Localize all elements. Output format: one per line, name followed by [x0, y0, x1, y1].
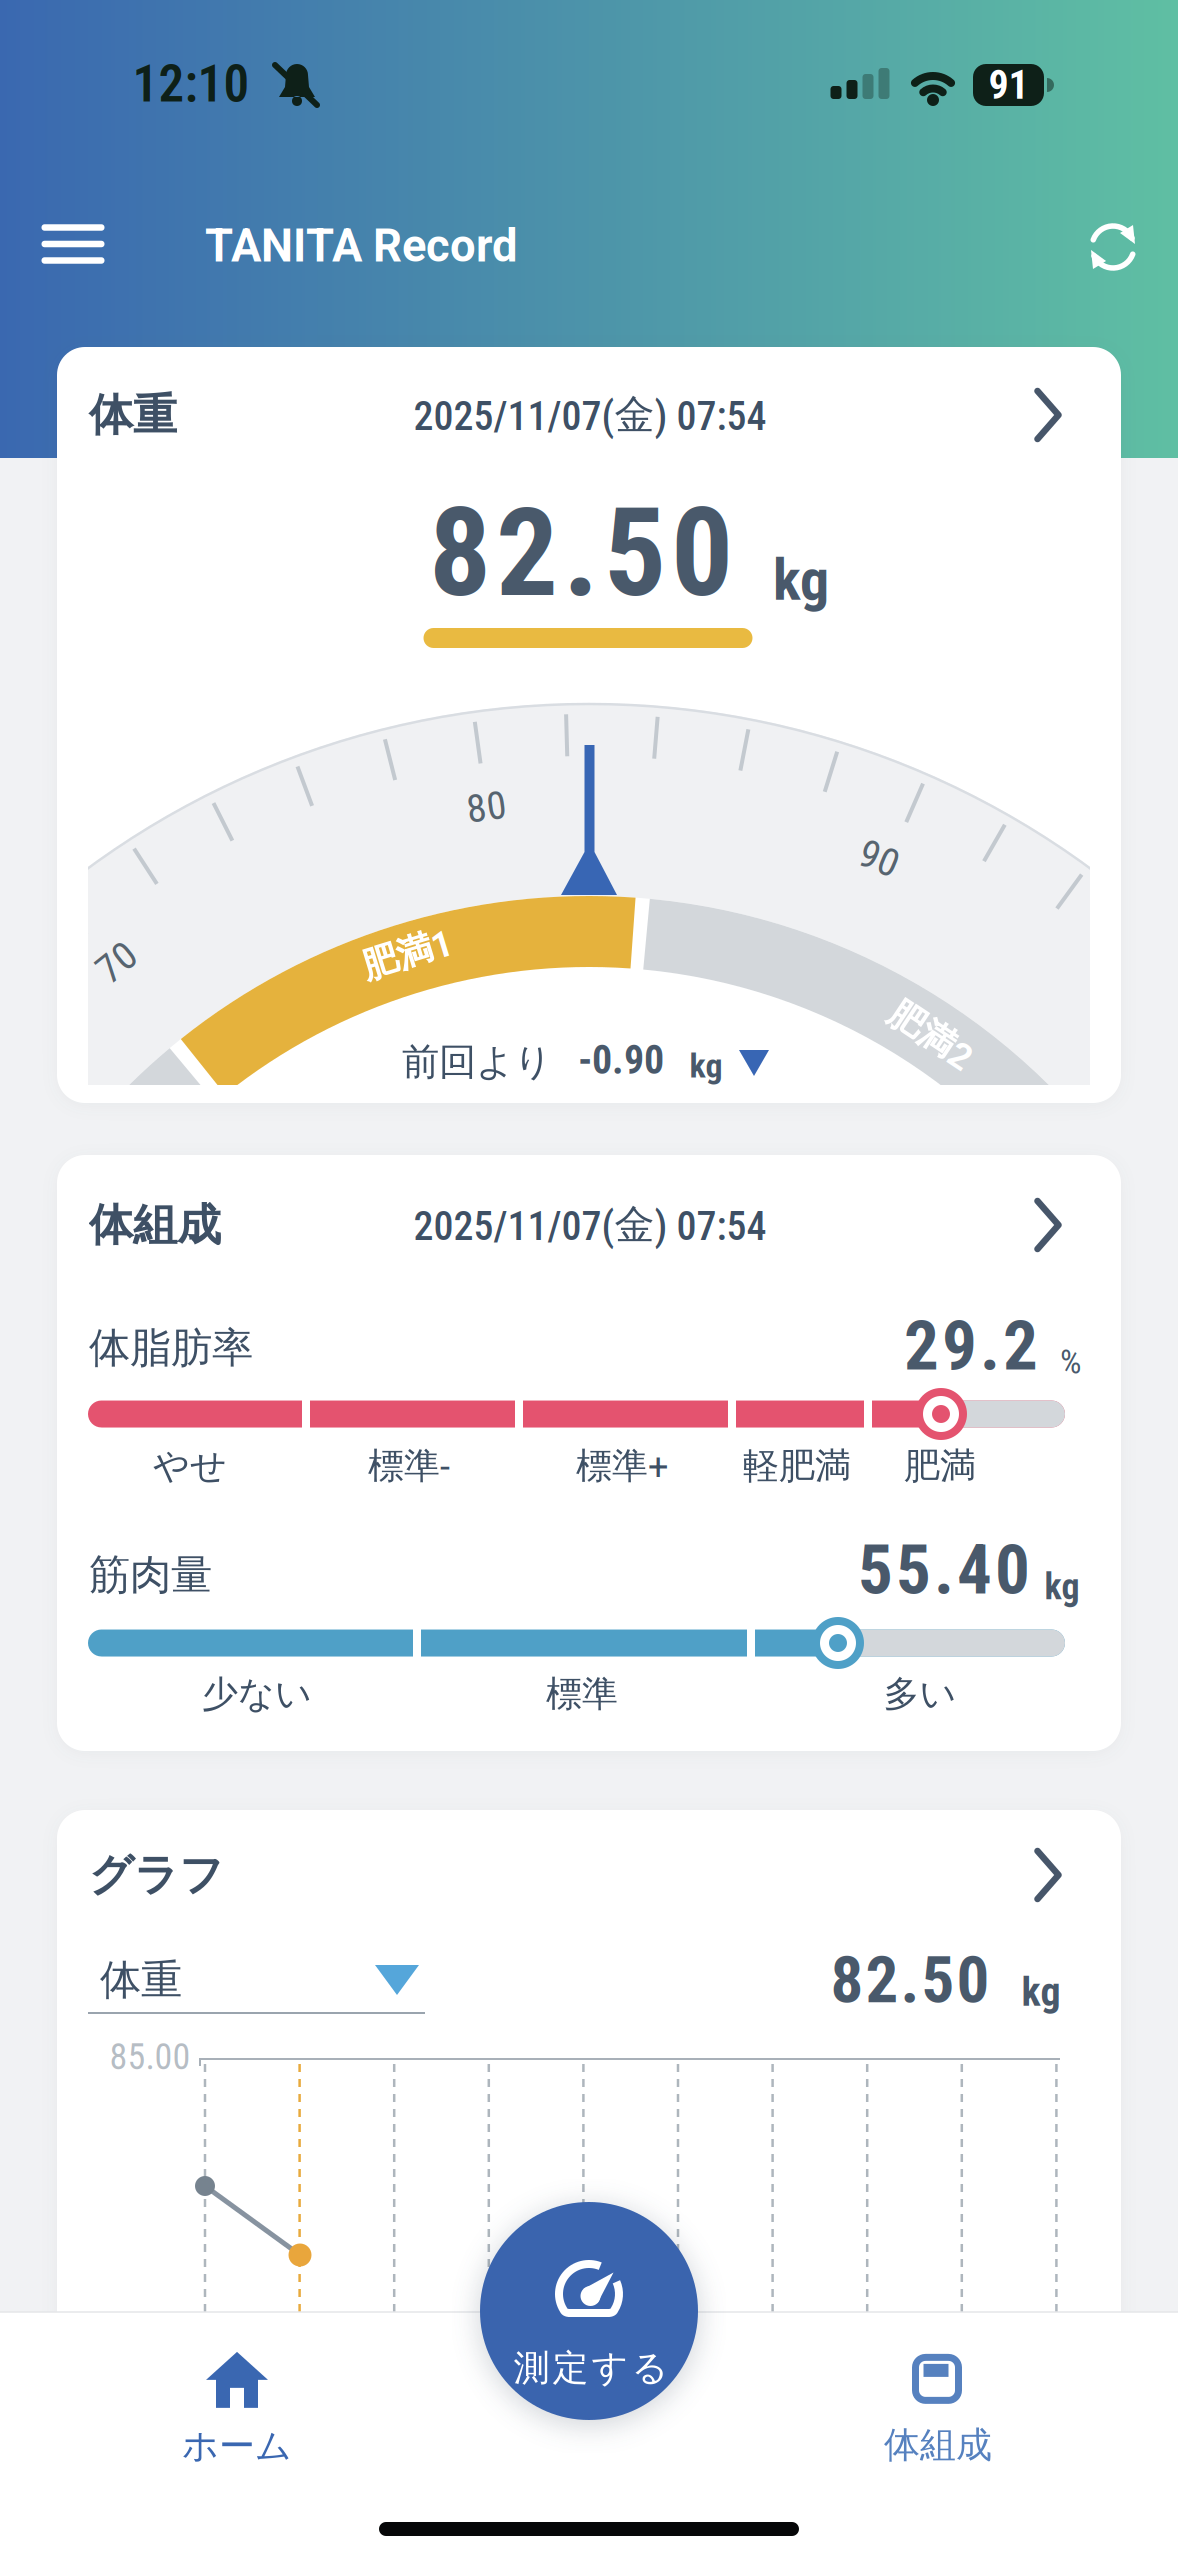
button[interactable]: 体組成: [818, 2344, 1058, 2476]
staticText: 91: [988, 62, 1028, 108]
staticText: 55.40: [858, 1530, 1030, 1610]
staticText: 体重: [100, 1955, 182, 2005]
staticText: 標準+: [576, 1444, 668, 1488]
staticText: 90: [859, 835, 899, 882]
staticText: 標準: [546, 1672, 618, 1716]
staticText: 多い: [883, 1672, 956, 1716]
staticText: 肥満1: [361, 932, 454, 976]
staticText: 体重: [89, 388, 177, 442]
staticText: ホーム: [182, 2424, 292, 2468]
button[interactable]: 体重の記録: [57, 347, 1121, 1103]
staticText: やせ: [153, 1444, 227, 1488]
button[interactable]: Sync: [1082, 216, 1144, 278]
staticText: グラフ: [89, 1848, 224, 1902]
staticText: -0.90: [578, 1037, 664, 1083]
staticText: 筋肉量: [89, 1550, 212, 1600]
staticText: 80: [467, 784, 507, 830]
staticText: 肥満2: [884, 1013, 977, 1057]
staticText: 前回より: [402, 1039, 552, 1085]
staticText: 12:10: [132, 54, 249, 114]
button[interactable]: グラフ: [57, 1810, 1121, 2370]
staticText: 体組成: [89, 1198, 221, 1252]
staticText: kg: [773, 546, 829, 614]
staticText: kg: [1021, 1969, 1060, 2015]
staticText: kg: [1044, 1566, 1079, 1608]
staticText: 軽肥満: [743, 1444, 851, 1488]
staticText: 標準-: [368, 1444, 450, 1488]
staticText: %: [1060, 1342, 1082, 1382]
staticText: 測定する: [513, 2346, 668, 2390]
button[interactable]: Menu: [41, 223, 104, 264]
button[interactable]: 体組成の記録: [57, 1155, 1121, 1751]
staticText: TANITA Record: [205, 220, 518, 272]
staticText: 体組成: [884, 2423, 992, 2467]
staticText: 少ない: [202, 1672, 312, 1716]
button[interactable]: 体重: [100, 1952, 437, 2008]
staticText: 82.50: [429, 481, 733, 625]
staticText: 2025/11/07(金) 07:54: [413, 390, 766, 440]
staticText: 体脂肪率: [89, 1323, 253, 1373]
staticText: 29.2: [904, 1306, 1038, 1386]
staticText: 70: [97, 939, 137, 986]
staticText: 85.00: [109, 2036, 190, 2078]
staticText: 2025/11/07(金) 07:54: [413, 1200, 766, 1250]
staticText: 82.50: [830, 1942, 989, 2018]
button[interactable]: ホーム: [117, 2344, 357, 2476]
button[interactable]: 測定する: [480, 2202, 698, 2420]
staticText: 肥満: [904, 1444, 976, 1488]
staticText: kg: [689, 1046, 722, 1086]
